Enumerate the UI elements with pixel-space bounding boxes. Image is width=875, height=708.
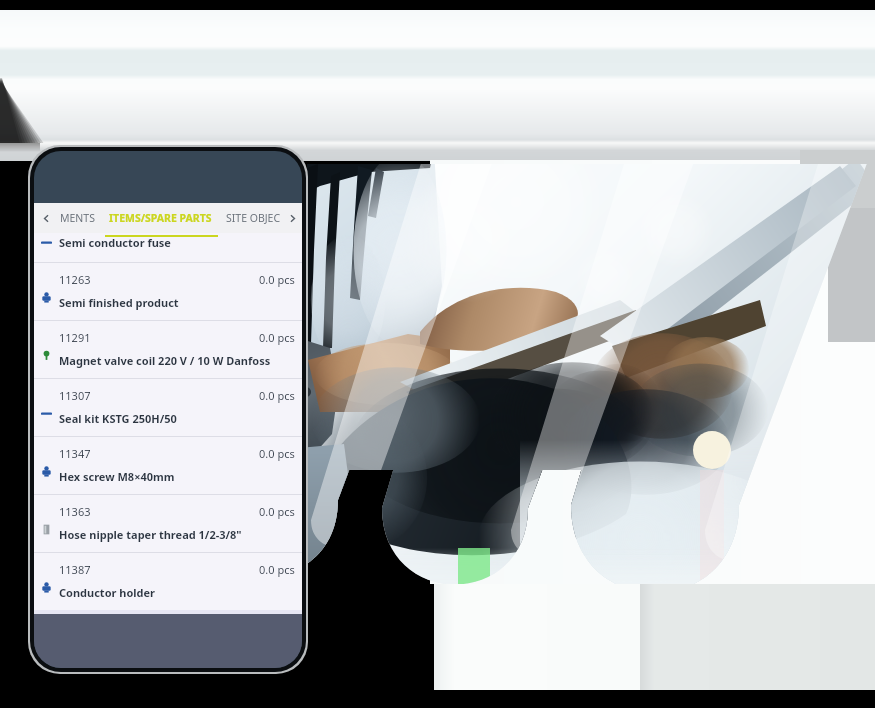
staticText: Magnet valve coil 220 V / 10 W Danfoss xyxy=(59,353,271,368)
button[interactable]: MENTS xyxy=(58,211,97,225)
staticText: 11387 xyxy=(59,562,91,577)
button[interactable]: 11363 xyxy=(34,494,302,552)
button[interactable]: 11291 xyxy=(34,320,302,378)
staticText: 11307 xyxy=(59,388,91,403)
staticText: Semi finished product xyxy=(59,295,179,310)
staticText: MENTS xyxy=(60,211,95,225)
staticText: SITE OBJEC xyxy=(226,211,281,225)
staticText: Conductor holder xyxy=(59,585,156,600)
button[interactable]: 11307 xyxy=(34,378,302,436)
button[interactable]: 11263 xyxy=(34,262,302,320)
button[interactable]: Previous tab xyxy=(34,203,58,233)
button[interactable]: Next tab xyxy=(283,203,302,233)
staticText: 11263 xyxy=(59,272,91,287)
button[interactable]: SITE OBJEC xyxy=(224,211,283,225)
staticText: Seal kit KSTG 250H/50 xyxy=(59,411,177,426)
staticText: Hex screw M8×40mm xyxy=(59,469,175,484)
staticText: 0.0 pcs xyxy=(259,272,295,287)
staticText: 0.0 pcs xyxy=(259,446,295,461)
staticText: 11347 xyxy=(59,446,91,461)
button[interactable]: ITEMS/SPARE PARTS xyxy=(107,211,214,225)
staticText: 0.0 pcs xyxy=(259,330,295,345)
button[interactable]: 11347 xyxy=(34,436,302,494)
staticText: 0.0 pcs xyxy=(259,388,295,403)
staticText: 0.0 pcs xyxy=(259,504,295,519)
button[interactable]: 11387 xyxy=(34,552,302,610)
staticText: 0.0 pcs xyxy=(259,562,295,577)
staticText: Hose nipple taper thread 1/2-3/8" xyxy=(59,527,242,542)
staticText: 11363 xyxy=(59,504,91,519)
staticText: ITEMS/SPARE PARTS xyxy=(109,211,212,225)
staticText: Semi conductor fuse xyxy=(59,235,171,250)
staticText: 11291 xyxy=(59,330,91,345)
